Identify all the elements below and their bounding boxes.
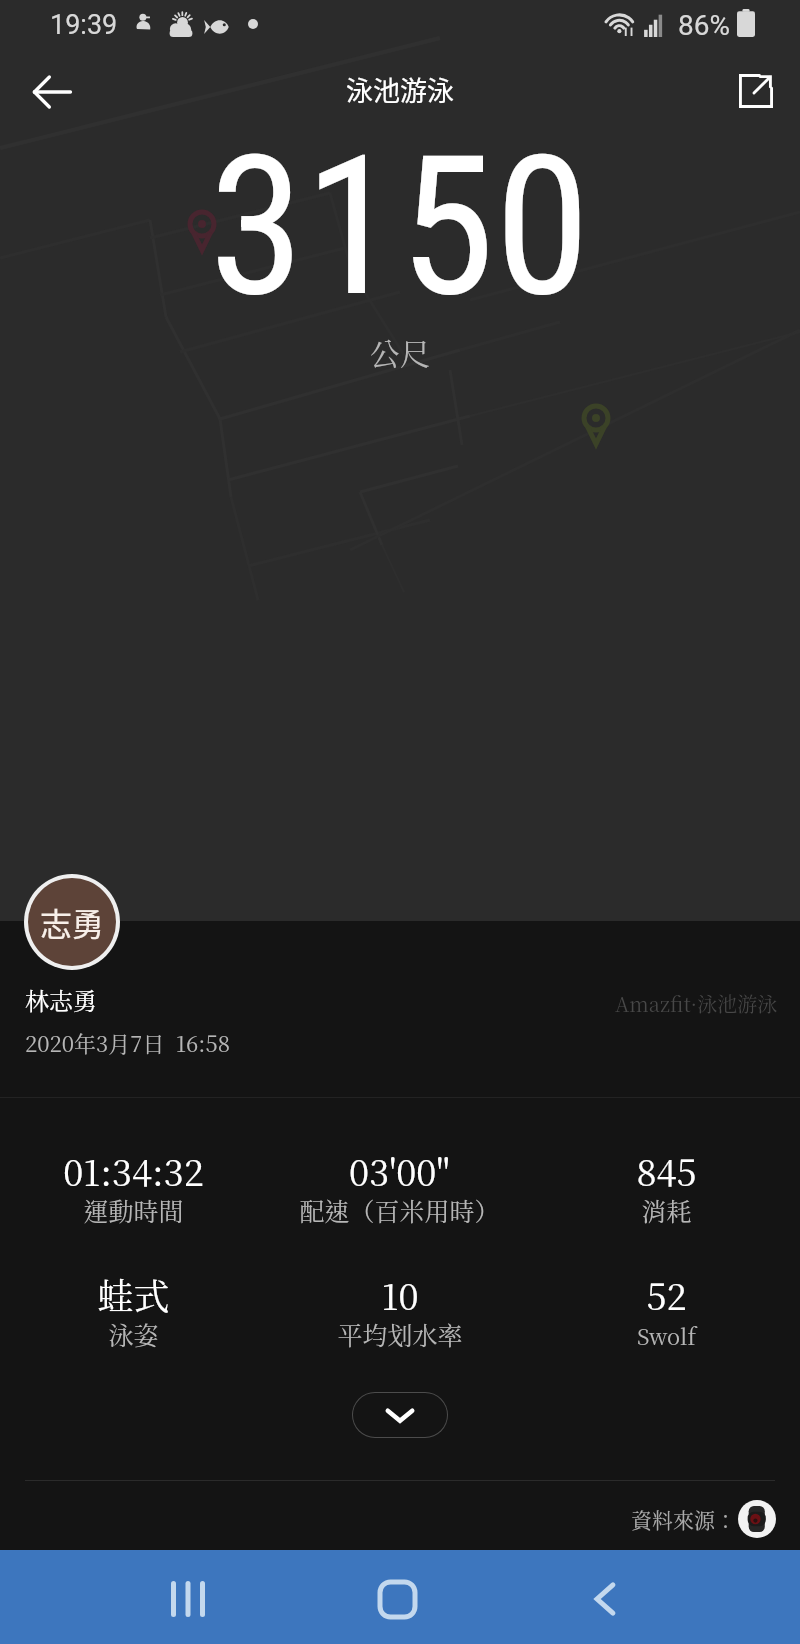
button[interactable]: 01:34:32: [0, 1145, 266, 1221]
staticText: 泳姿: [108, 1316, 159, 1352]
staticText: 泳池游泳: [346, 70, 454, 109]
staticText: 19:39: [50, 9, 118, 41]
staticText: 平均划水率: [337, 1316, 463, 1352]
staticText: 01:34:32: [63, 1145, 204, 1197]
staticText: 資料來源：: [631, 1504, 736, 1534]
button[interactable]: Recent apps: [143, 1554, 233, 1644]
staticText: Amazfit·泳池游泳: [615, 989, 778, 1018]
button[interactable]: Home: [352, 1554, 442, 1644]
staticText: 配速（百米用時）: [299, 1192, 500, 1228]
button[interactable]: Back: [18, 58, 86, 126]
button[interactable]: 10: [266, 1269, 533, 1345]
button[interactable]: User avatar: [24, 874, 120, 970]
staticText: 消耗: [641, 1192, 692, 1228]
staticText: 蛙式: [97, 1269, 170, 1321]
button[interactable]: 52: [533, 1269, 800, 1345]
staticText: 林志勇: [25, 982, 97, 1016]
button[interactable]: Expand details: [352, 1392, 448, 1438]
staticText: 10: [381, 1269, 419, 1321]
button[interactable]: 林志勇 2020年3月7日 16:58: [0, 975, 800, 1060]
button[interactable]: Share: [722, 57, 790, 125]
staticText: 3150: [209, 114, 591, 340]
staticText: 志勇: [40, 899, 105, 945]
button[interactable]: Data source device: [738, 1500, 776, 1538]
staticText: 52: [646, 1269, 687, 1321]
staticText: 86%: [678, 9, 730, 42]
button[interactable]: Back: [560, 1554, 650, 1644]
staticText: 845: [636, 1145, 697, 1197]
button[interactable]: 845: [533, 1145, 800, 1221]
staticText: 2020年3月7日 16:58: [25, 1027, 231, 1059]
staticText: Swolf: [637, 1320, 696, 1352]
button[interactable]: 03'00": [266, 1145, 533, 1221]
staticText: 03'00": [349, 1145, 450, 1197]
button[interactable]: 蛙式: [0, 1269, 266, 1345]
staticText: 運動時間: [83, 1192, 184, 1228]
staticText: 公尺: [370, 330, 430, 373]
